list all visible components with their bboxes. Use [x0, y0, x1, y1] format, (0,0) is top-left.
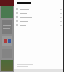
button[interactable] — [14, 11, 64, 15]
button[interactable]: Bottom bar — [14, 69, 64, 72]
button[interactable] — [14, 15, 64, 19]
button[interactable] — [14, 7, 64, 11]
button[interactable] — [14, 23, 64, 27]
button[interactable]: Card — [2, 36, 12, 46]
button[interactable]: Article — [2, 20, 12, 34]
button[interactable] — [14, 19, 64, 23]
button[interactable]: Photo — [1, 60, 13, 71]
